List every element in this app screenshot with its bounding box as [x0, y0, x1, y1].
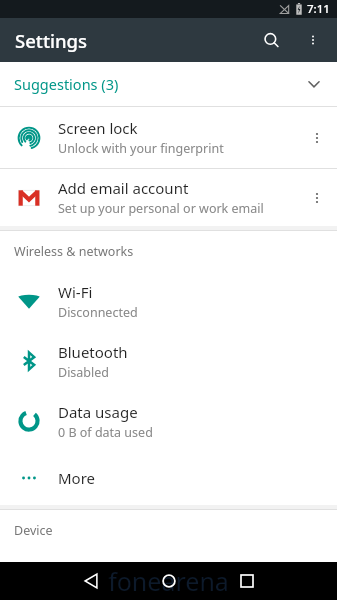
- button[interactable]: Data usage: [0, 391, 337, 451]
- staticText: Add email account: [58, 178, 189, 198]
- button[interactable]: More: [0, 451, 337, 505]
- button[interactable]: Search: [249, 18, 293, 62]
- staticText: Data usage: [58, 402, 138, 422]
- button[interactable]: Add email account: [0, 169, 337, 226]
- staticText: Suggestions (3): [14, 74, 119, 94]
- staticText: Settings: [15, 28, 88, 53]
- staticText: fonearena: [108, 564, 229, 598]
- button[interactable]: Suggestions (3): [0, 62, 337, 106]
- staticText: Device: [14, 522, 53, 539]
- staticText: Bluetooth: [58, 342, 128, 362]
- staticText: Disabled: [58, 364, 110, 381]
- staticText: Wi-Fi: [58, 282, 93, 302]
- staticText: 0 B of data used: [58, 424, 153, 441]
- button[interactable]: Recent apps: [223, 562, 271, 600]
- staticText: More: [58, 468, 96, 488]
- staticText: Screen lock: [58, 118, 138, 138]
- button[interactable]: Home: [145, 562, 193, 600]
- staticText: 7:11: [307, 1, 330, 17]
- button[interactable]: Wi-Fi: [0, 271, 337, 331]
- staticText: Unlock with your fingerprint: [58, 140, 224, 157]
- staticText: Disconnected: [58, 304, 138, 321]
- button[interactable]: Back: [67, 562, 115, 600]
- staticText: Wireless & networks: [14, 243, 134, 260]
- button[interactable]: More options: [297, 107, 337, 168]
- button[interactable]: More options: [297, 169, 337, 226]
- button[interactable]: Screen lock: [0, 107, 337, 168]
- button[interactable]: Bluetooth: [0, 331, 337, 391]
- button[interactable]: More options: [293, 20, 333, 60]
- staticText: Set up your personal or work email: [58, 200, 264, 217]
